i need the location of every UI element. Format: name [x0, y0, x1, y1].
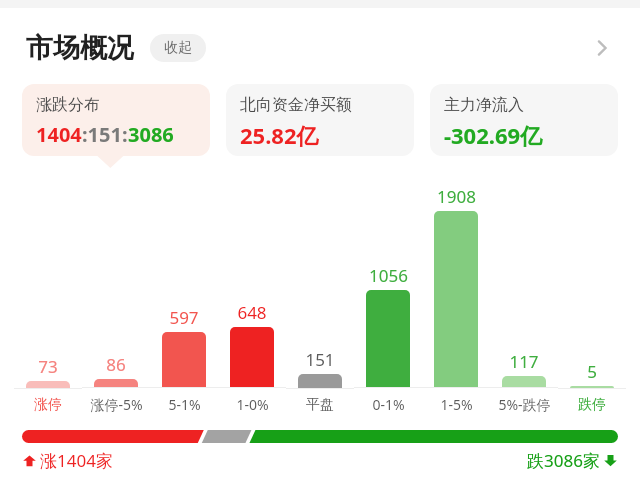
staticText: 73: [38, 355, 58, 378]
staticText: 1908: [437, 185, 476, 208]
staticText: 涨1404家: [40, 449, 113, 472]
staticText: 5-1%: [168, 395, 201, 414]
staticText: 市场概况: [26, 31, 134, 65]
staticText: 1-0%: [236, 395, 269, 414]
staticText: :151:: [82, 121, 128, 148]
button[interactable]: 涨1404家: [0, 430, 640, 472]
staticText: 1-5%: [440, 395, 473, 414]
staticText: -302.69亿: [444, 120, 543, 150]
staticText: 5: [587, 360, 597, 383]
staticText: 151: [305, 348, 335, 371]
staticText: 25.82亿: [240, 120, 319, 150]
staticText: 平盘: [306, 396, 334, 414]
button[interactable]: 北向资金净买额: [226, 84, 414, 156]
button[interactable]: 收起: [150, 34, 206, 62]
staticText: 597: [169, 306, 199, 329]
staticText: 5%-跌停: [498, 395, 551, 414]
button[interactable]: 市场概况: [0, 20, 640, 76]
staticText: 涨停: [34, 396, 62, 414]
staticText: 0-1%: [372, 395, 405, 414]
staticText: 1056: [369, 264, 408, 287]
staticText: 跌停: [578, 396, 606, 414]
button[interactable]: 展开更多: [582, 28, 622, 68]
staticText: 1404: [36, 121, 82, 148]
staticText: 收起: [164, 39, 192, 57]
staticText: 跌3086家: [527, 449, 600, 472]
button[interactable]: 主力净流入: [430, 84, 618, 156]
staticText: 涨停-5%: [90, 395, 143, 414]
staticText: 648: [237, 301, 267, 324]
staticText: 3086: [128, 121, 174, 148]
staticText: 涨跌分布: [36, 95, 100, 115]
staticText: 北向资金净买额: [240, 95, 352, 115]
staticText: 86: [106, 353, 126, 376]
button[interactable]: 涨跌分布: [22, 84, 210, 156]
staticText: 117: [509, 350, 539, 373]
staticText: 主力净流入: [444, 95, 524, 115]
